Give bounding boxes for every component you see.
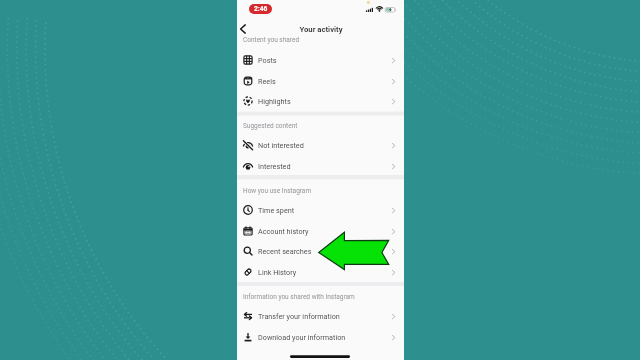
- staticText: Suggested content: [243, 122, 298, 130]
- staticText: Recent searches: [258, 247, 312, 255]
- staticText: Time spent: [258, 206, 295, 214]
- staticText: Link History: [258, 268, 297, 276]
- button[interactable]: Interested: [237, 156, 404, 176]
- staticText: Your activity: [299, 25, 343, 34]
- button[interactable]: Link History: [237, 262, 404, 282]
- staticText: Transfer your information: [258, 312, 340, 320]
- button[interactable]: Time spent: [237, 200, 404, 220]
- button[interactable]: Posts: [237, 50, 404, 70]
- button[interactable]: Download your information: [237, 327, 404, 347]
- staticText: Not interested: [258, 141, 304, 149]
- button[interactable]: Back: [238, 22, 248, 36]
- staticText: How you use Instagram: [243, 187, 312, 195]
- staticText: Reels: [258, 77, 276, 85]
- staticText: Information you shared with Instagram: [243, 293, 355, 301]
- button[interactable]: Account history: [237, 221, 404, 241]
- button[interactable]: Not interested: [237, 135, 404, 155]
- staticText: Highlights: [258, 97, 291, 105]
- staticText: Content you shared: [243, 36, 300, 44]
- button[interactable]: Recent searches: [237, 241, 404, 261]
- staticText: Posts: [258, 56, 277, 64]
- button[interactable]: Reels: [237, 71, 404, 91]
- staticText: Interested: [258, 162, 291, 170]
- button[interactable]: Transfer your information: [237, 306, 404, 326]
- staticText: Account history: [258, 227, 309, 235]
- button[interactable]: Highlights: [237, 91, 404, 111]
- staticText: 2:46: [254, 5, 268, 13]
- staticText: Download your information: [258, 333, 346, 341]
